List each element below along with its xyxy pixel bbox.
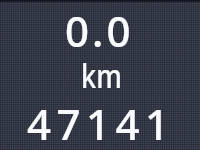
staticText: 0.0 bbox=[65, 2, 134, 59]
staticText: km bbox=[81, 53, 122, 98]
button[interactable]: 0.0 bbox=[0, 0, 200, 150]
staticText: 47141 bbox=[27, 95, 175, 150]
